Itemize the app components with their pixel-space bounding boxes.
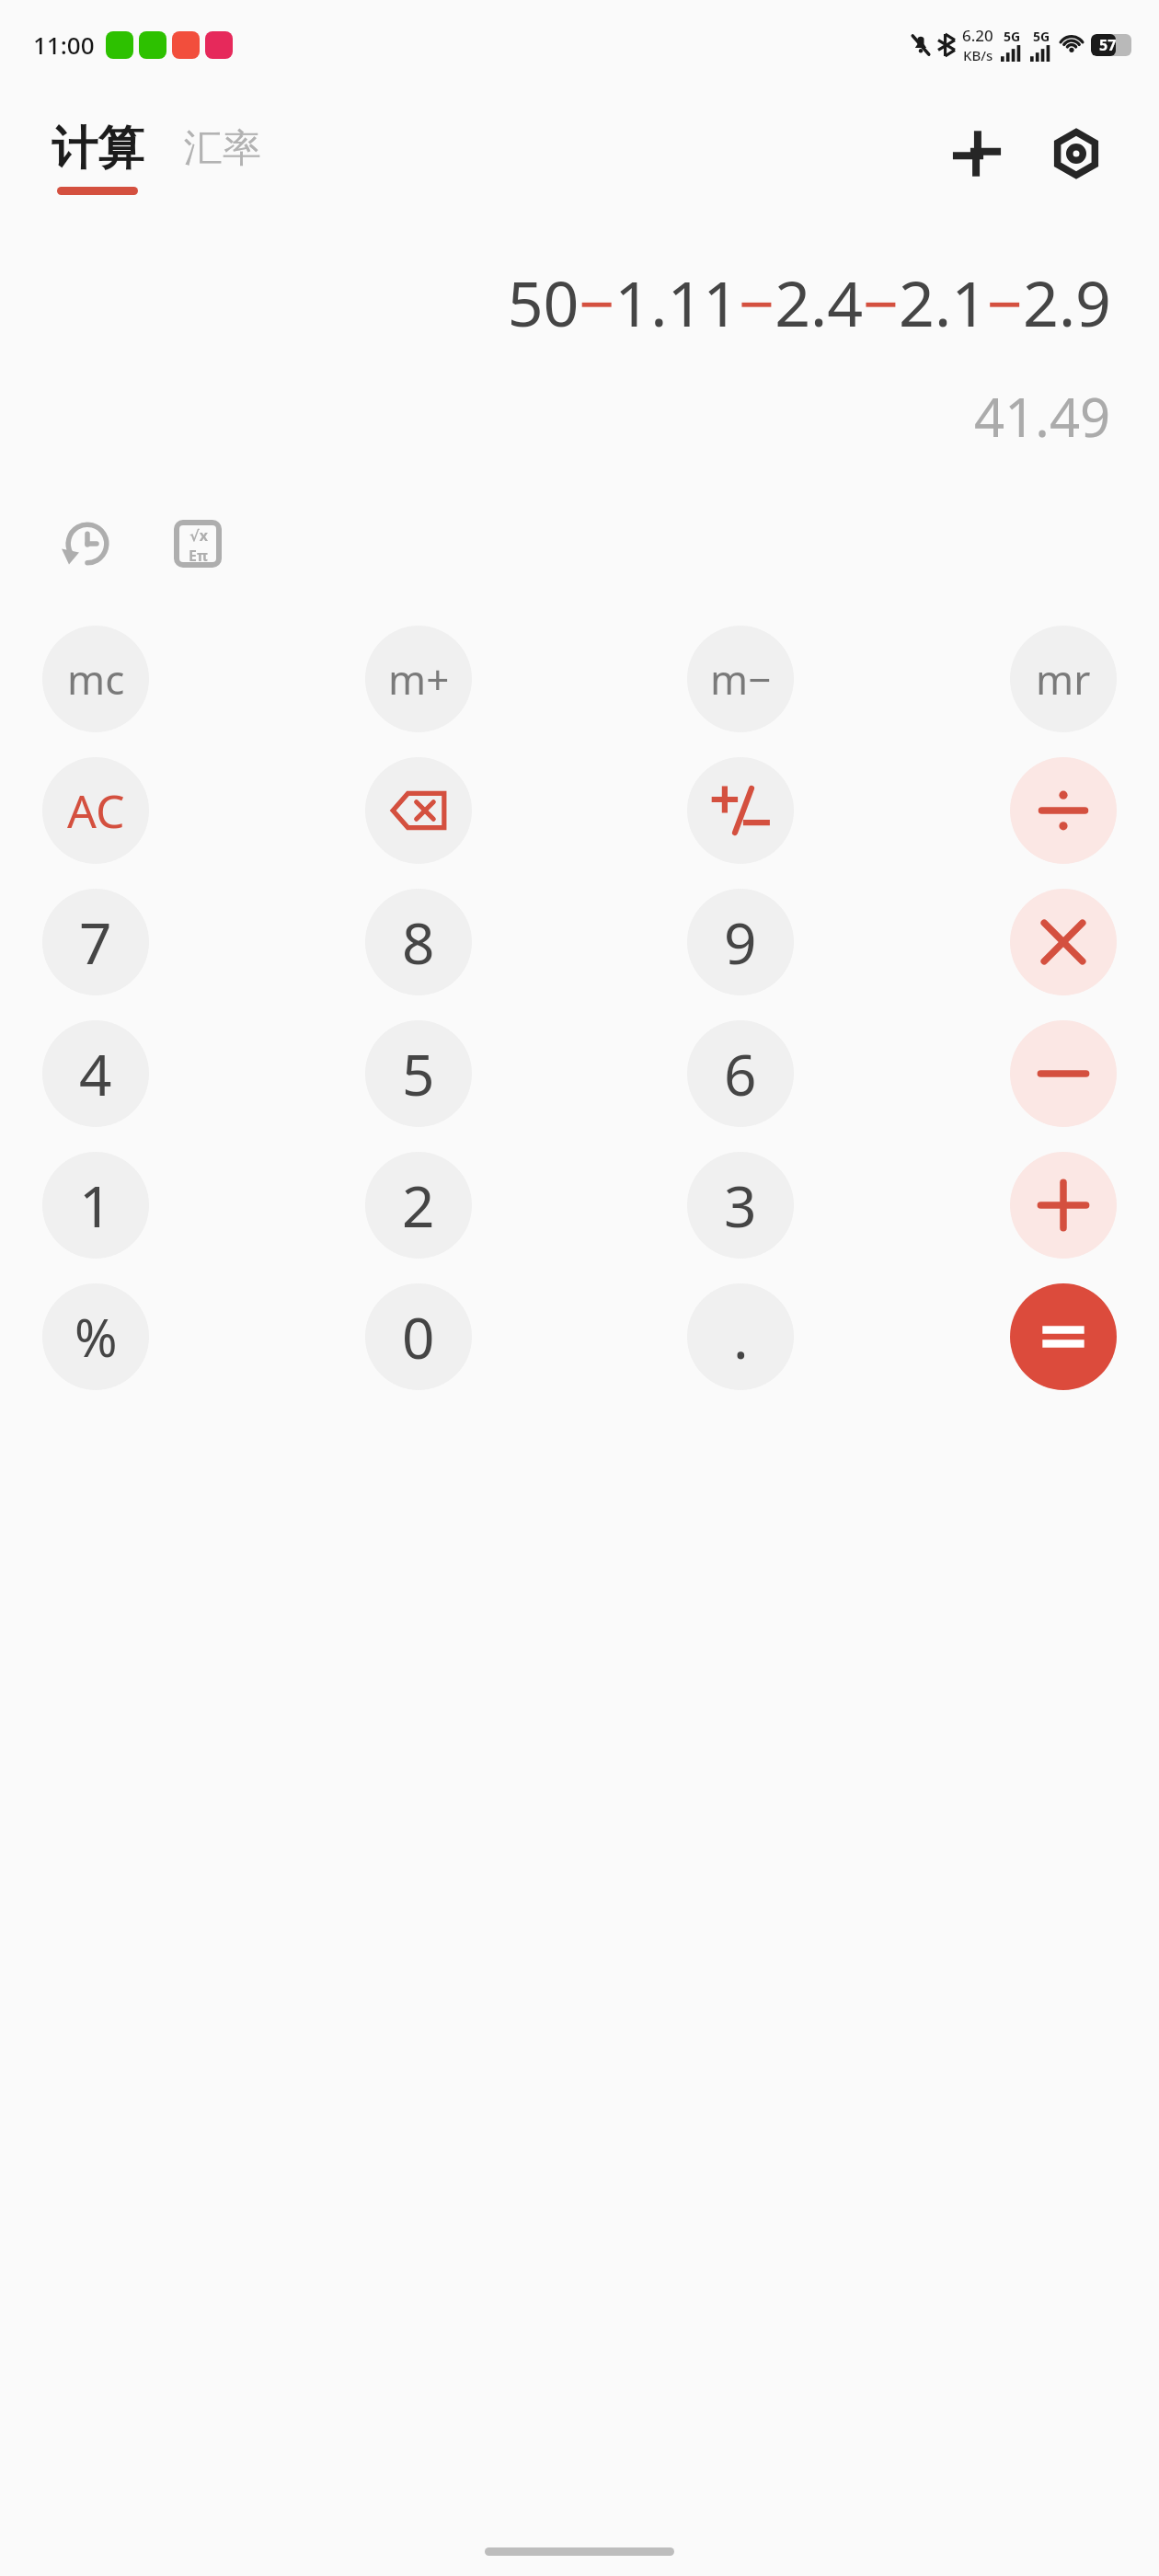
button[interactable]: 2 (365, 1152, 472, 1259)
button[interactable]: 0 (365, 1283, 472, 1390)
button[interactable]: Equals (1010, 1283, 1117, 1390)
button[interactable]: 4 (42, 1020, 149, 1127)
staticText: 7 (79, 903, 112, 981)
button[interactable]: 5 (365, 1020, 472, 1127)
staticText: 3 (724, 1167, 757, 1244)
button[interactable]: 计算 (48, 120, 147, 195)
button[interactable]: m− (687, 626, 794, 732)
button[interactable]: 6 (687, 1020, 794, 1127)
staticText: 汇率 (184, 124, 261, 173)
staticText: 计算 (52, 120, 143, 178)
button[interactable]: mc (42, 626, 149, 732)
staticText: 2 (402, 1167, 435, 1244)
button[interactable]: 8 (365, 889, 472, 995)
staticText: 41.49 (974, 380, 1111, 453)
staticText: 8 (402, 903, 435, 981)
staticText: KB/s (963, 46, 993, 64)
staticText: 0 (402, 1298, 435, 1375)
staticText: 6 (724, 1035, 757, 1112)
staticText: 11:00 (33, 29, 95, 61)
button[interactable]: Subtract (1010, 1020, 1117, 1127)
button[interactable]: Backspace (365, 757, 472, 864)
staticText: 9 (724, 903, 757, 981)
button[interactable]: . (687, 1283, 794, 1390)
button[interactable]: Scientific mode (158, 504, 237, 583)
button[interactable]: 9 (687, 889, 794, 995)
button[interactable]: Divide (1010, 757, 1117, 864)
staticText: 1 (79, 1167, 112, 1244)
button[interactable]: Floating window (938, 115, 1016, 192)
button[interactable]: Add (1010, 1152, 1117, 1259)
staticText: 57 (1099, 35, 1117, 55)
staticText: mr (1036, 651, 1091, 707)
staticText: m− (710, 651, 772, 707)
button[interactable]: Multiply (1010, 889, 1117, 995)
staticText: AC (67, 779, 125, 842)
button[interactable]: Toggle sign (687, 757, 794, 864)
button[interactable]: 汇率 (180, 124, 265, 190)
staticText: mc (67, 651, 125, 707)
button[interactable]: 3 (687, 1152, 794, 1259)
button[interactable]: History (48, 504, 127, 583)
staticText: Eπ (189, 546, 208, 562)
staticText: 4 (79, 1035, 112, 1112)
button[interactable]: Settings (1038, 115, 1115, 192)
button[interactable]: 7 (42, 889, 149, 995)
staticText: 5 (402, 1035, 435, 1112)
staticText: √x (189, 525, 208, 546)
staticText: 5G (1033, 28, 1050, 45)
staticText: 6.20 (962, 25, 993, 46)
staticText: 5G (1004, 28, 1021, 45)
button[interactable]: m+ (365, 626, 472, 732)
button[interactable]: mr (1010, 626, 1117, 732)
staticText: % (75, 1302, 118, 1372)
staticText: 50−1.11−2.4−2.1−2.9 (507, 259, 1111, 345)
staticText: . (733, 1298, 749, 1375)
staticText: m+ (388, 651, 450, 707)
button[interactable]: % (42, 1283, 149, 1390)
button[interactable]: 1 (42, 1152, 149, 1259)
button[interactable]: AC (42, 757, 149, 864)
